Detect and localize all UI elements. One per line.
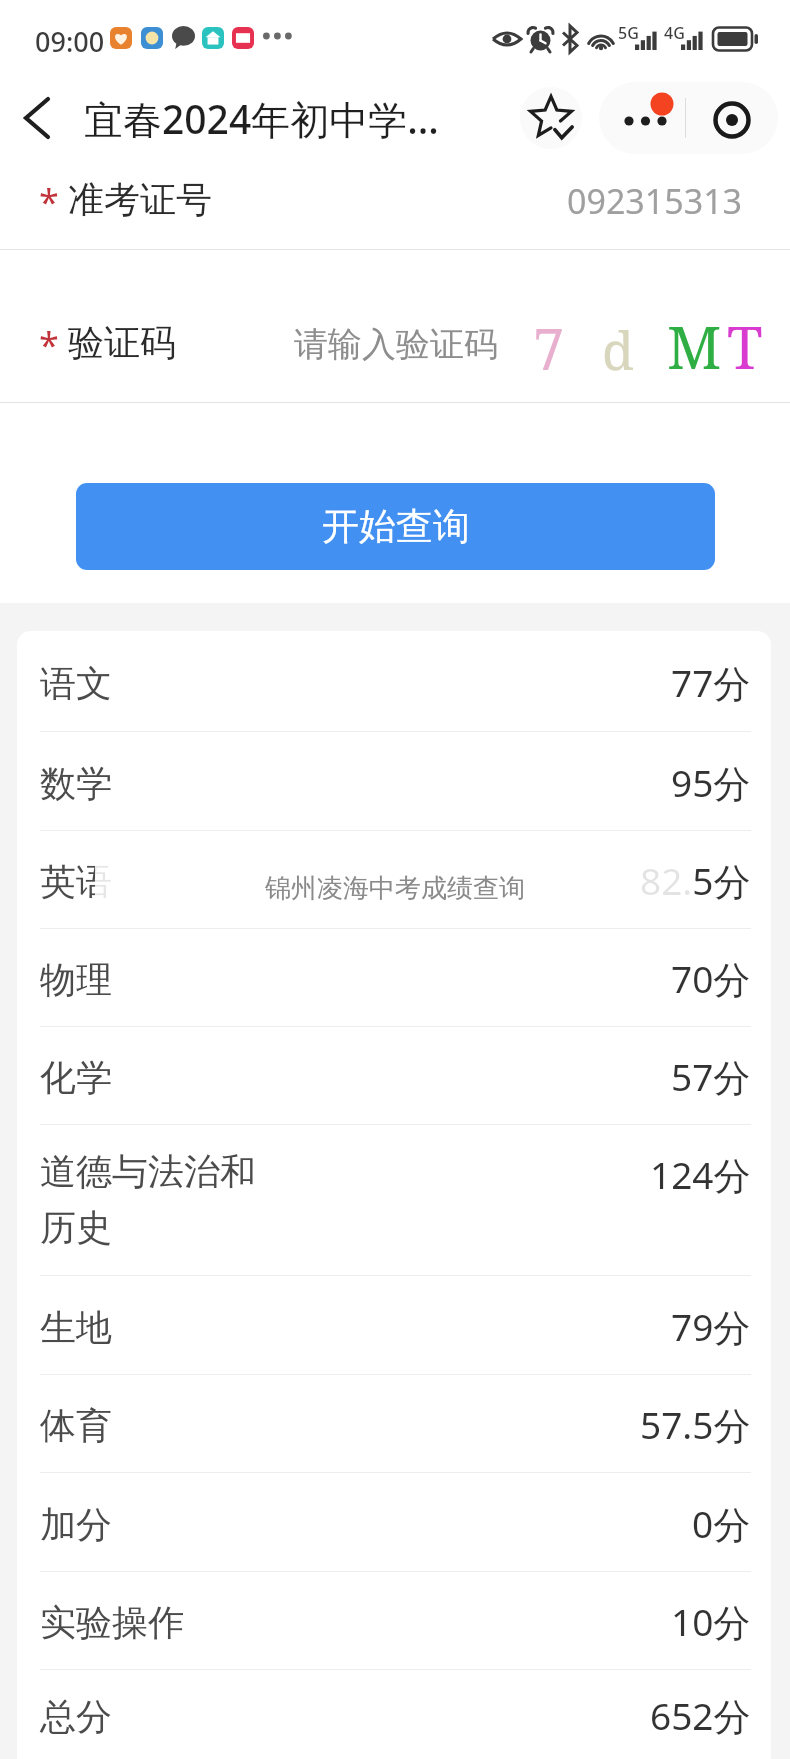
staticText: 82.5分: [640, 855, 751, 906]
staticText: 体育: [40, 1403, 112, 1448]
staticText: 实验操作: [40, 1600, 184, 1645]
staticText: T: [727, 307, 763, 386]
button[interactable]: 实验操作: [17, 1572, 771, 1669]
staticText: 4G: [664, 22, 685, 44]
staticText: 70分: [671, 953, 751, 1004]
staticText: 0分: [692, 1498, 751, 1549]
button[interactable]: Back: [6, 87, 68, 149]
staticText: 英语: [40, 859, 112, 904]
staticText: 652分: [650, 1690, 751, 1741]
staticText: 验证码: [68, 320, 176, 365]
staticText: 95分: [671, 757, 751, 808]
staticText: *: [39, 320, 59, 369]
staticText: 09:00: [35, 23, 105, 60]
button[interactable]: 开始查询: [76, 483, 715, 570]
staticText: 092315313: [567, 178, 743, 224]
staticText: 加分: [40, 1502, 112, 1547]
staticText: 79分: [671, 1301, 751, 1352]
button[interactable]: Close: [686, 82, 778, 154]
button[interactable]: 物理: [17, 929, 771, 1026]
staticText: 开始查询: [322, 503, 470, 550]
button[interactable]: 英语: [17, 831, 771, 928]
staticText: 物理: [40, 957, 112, 1002]
staticText: 77分: [671, 657, 751, 708]
staticText: 57分: [671, 1051, 751, 1102]
staticText: 124分: [650, 1149, 751, 1200]
staticText: 宜春2024年初中学…: [84, 92, 439, 145]
button[interactable]: 生地: [17, 1276, 771, 1374]
staticText: 5G: [618, 22, 639, 44]
staticText: 化学: [40, 1055, 112, 1100]
staticText: 道德与法治和 历史: [40, 1149, 256, 1251]
staticText: *: [39, 177, 59, 226]
button[interactable]: 数学: [17, 732, 771, 830]
staticText: M: [667, 307, 722, 386]
staticText: 数学: [40, 761, 112, 806]
button[interactable]: More options: [599, 82, 685, 154]
staticText: 总分: [40, 1694, 112, 1739]
button[interactable]: 加分: [17, 1473, 771, 1571]
button[interactable]: 体育: [17, 1375, 771, 1472]
button[interactable]: *: [0, 250, 790, 403]
staticText: 生地: [40, 1305, 112, 1350]
staticText: 准考证号: [68, 177, 212, 222]
staticText: 10分: [671, 1596, 751, 1647]
button[interactable]: 道德与法治和 历史: [17, 1125, 771, 1275]
staticText: d: [602, 314, 634, 385]
staticText: 57.5分: [640, 1399, 751, 1450]
button[interactable]: Favorite: [520, 87, 582, 149]
staticText: 请输入验证码: [294, 323, 498, 366]
button[interactable]: 化学: [17, 1027, 771, 1124]
staticText: 语文: [40, 661, 112, 706]
button[interactable]: 总分: [17, 1670, 771, 1759]
staticText: 锦州凌海中考成绩查询: [265, 872, 525, 905]
staticText: 7: [533, 310, 565, 386]
button[interactable]: 语文: [17, 631, 771, 731]
button[interactable]: *: [0, 162, 790, 250]
